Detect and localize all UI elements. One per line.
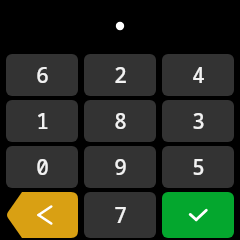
button[interactable]: Confirm — [162, 192, 234, 238]
button[interactable]: 9 — [84, 146, 156, 188]
staticText: 4 — [192, 61, 205, 90]
button[interactable]: 1 — [6, 100, 78, 142]
staticText: 9 — [114, 153, 127, 182]
button[interactable]: 4 — [162, 54, 234, 96]
staticText: 2 — [114, 61, 127, 90]
button[interactable]: 3 — [162, 100, 234, 142]
staticText: 8 — [114, 107, 127, 136]
staticText: 0 — [36, 153, 49, 182]
staticText: 3 — [192, 107, 205, 136]
staticText: 5 — [192, 153, 205, 182]
staticText: 7 — [114, 201, 127, 230]
staticText: 6 — [36, 61, 49, 90]
button[interactable]: Backspace — [6, 192, 78, 238]
button[interactable]: 6 — [6, 54, 78, 96]
button[interactable]: 0 — [6, 146, 78, 188]
button[interactable]: 8 — [84, 100, 156, 142]
staticText: 1 — [36, 107, 49, 136]
button[interactable]: 5 — [162, 146, 234, 188]
button[interactable]: 7 — [84, 192, 156, 238]
button[interactable]: 2 — [84, 54, 156, 96]
